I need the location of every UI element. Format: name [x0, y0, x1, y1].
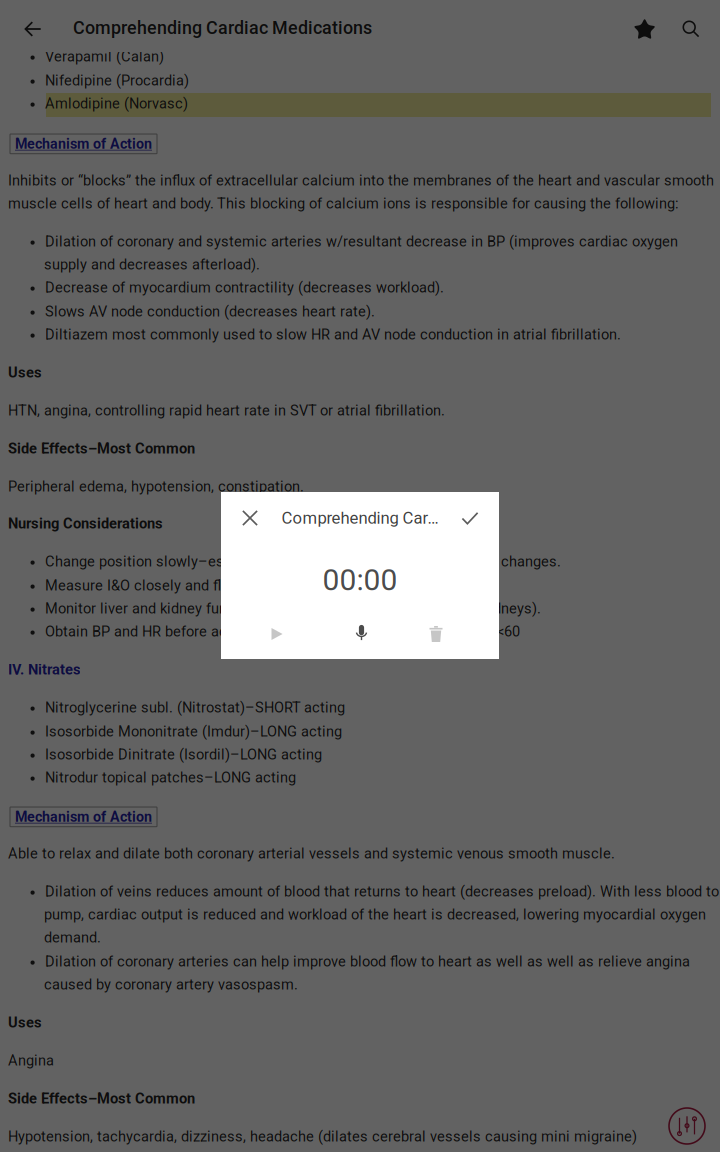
button[interactable]: Display settings [667, 1106, 707, 1146]
button[interactable]: Mechanism of Action [10, 134, 157, 154]
staticText: Decrease of myocardium contractility (de… [45, 279, 444, 296]
button[interactable]: Save [441, 492, 499, 544]
button[interactable]: Play [221, 614, 333, 654]
staticText: Dilation of coronary arteries can help i… [45, 953, 690, 970]
staticText: Nitrodur topical patches–LONG acting [45, 769, 296, 786]
staticText: muscle cells of heart and body. This blo… [8, 195, 679, 212]
staticText: Nifedipine (Procardia) [45, 72, 189, 89]
button[interactable]: Cancel [221, 492, 279, 544]
staticText: Dilation of veins reduces amount of bloo… [45, 883, 719, 900]
staticText: Able to relax and dilate both coronary a… [8, 845, 615, 862]
staticText: Peripheral edema, hypotension, constipat… [8, 478, 304, 495]
staticText: HTN, angina, controlling rapid heart rat… [8, 402, 445, 419]
button[interactable]: Back [0, 0, 66, 48]
staticText: Side Effects–Most Common [8, 1090, 195, 1107]
staticText: Slows AV node conduction (decreases hear… [45, 303, 375, 320]
staticText: Diltiazem most commonly used to slow HR … [45, 326, 621, 343]
staticText: Uses [8, 364, 42, 381]
staticText: supply and decreases afterload). [44, 256, 260, 273]
staticText: Isosorbide Dinitrate (Isordil)–LONG acti… [45, 746, 322, 763]
staticText: Uses [8, 1014, 42, 1031]
staticText: Measure I&O closely and fluid retention.… [45, 577, 391, 594]
button[interactable]: Delete [390, 614, 482, 654]
staticText: demand. [44, 929, 101, 946]
staticText: caused by coronary artery vasospasm. [44, 976, 298, 993]
staticText: Comprehending Car… [281, 508, 438, 528]
staticText: Comprehending Cardiac Medications [73, 17, 372, 38]
button[interactable]: Bookmark [614, 0, 662, 48]
staticText: pump, cardiac output is reduced and work… [44, 906, 706, 923]
staticText: 00:00 [322, 562, 397, 598]
staticText: Verapamil (Calan) [45, 48, 164, 65]
staticText: Mechanism of Action [15, 808, 152, 825]
staticText: Angina [8, 1052, 54, 1069]
button[interactable]: Search [662, 0, 720, 48]
staticText: Monitor liver and kidney function (drug … [45, 600, 541, 617]
staticText: Mechanism of Action [15, 135, 152, 152]
staticText: Side Effects–Most Common [8, 440, 195, 457]
staticText: Nursing Considerations [8, 515, 163, 532]
staticText: Nitroglycerine subl. (Nitrostat)–SHORT a… [45, 699, 345, 716]
staticText: Inhibits or “blocks” the influx of extra… [8, 172, 714, 189]
staticText: Hypotension, tachycardia, dizziness, hea… [8, 1128, 637, 1145]
staticText: Change position slowly–especially with r… [45, 553, 561, 570]
staticText: Dilation of coronary and systemic arteri… [45, 233, 678, 250]
staticText: Obtain BP and HR before administration. … [45, 623, 520, 640]
button[interactable]: Record [333, 614, 390, 654]
staticText: Amlodipine (Norvasc) [45, 95, 188, 112]
button[interactable]: Mechanism of Action [10, 807, 157, 827]
staticText: IV. Nitrates [8, 661, 81, 678]
staticText: Isosorbide Mononitrate (Imdur)–LONG acti… [45, 723, 342, 740]
